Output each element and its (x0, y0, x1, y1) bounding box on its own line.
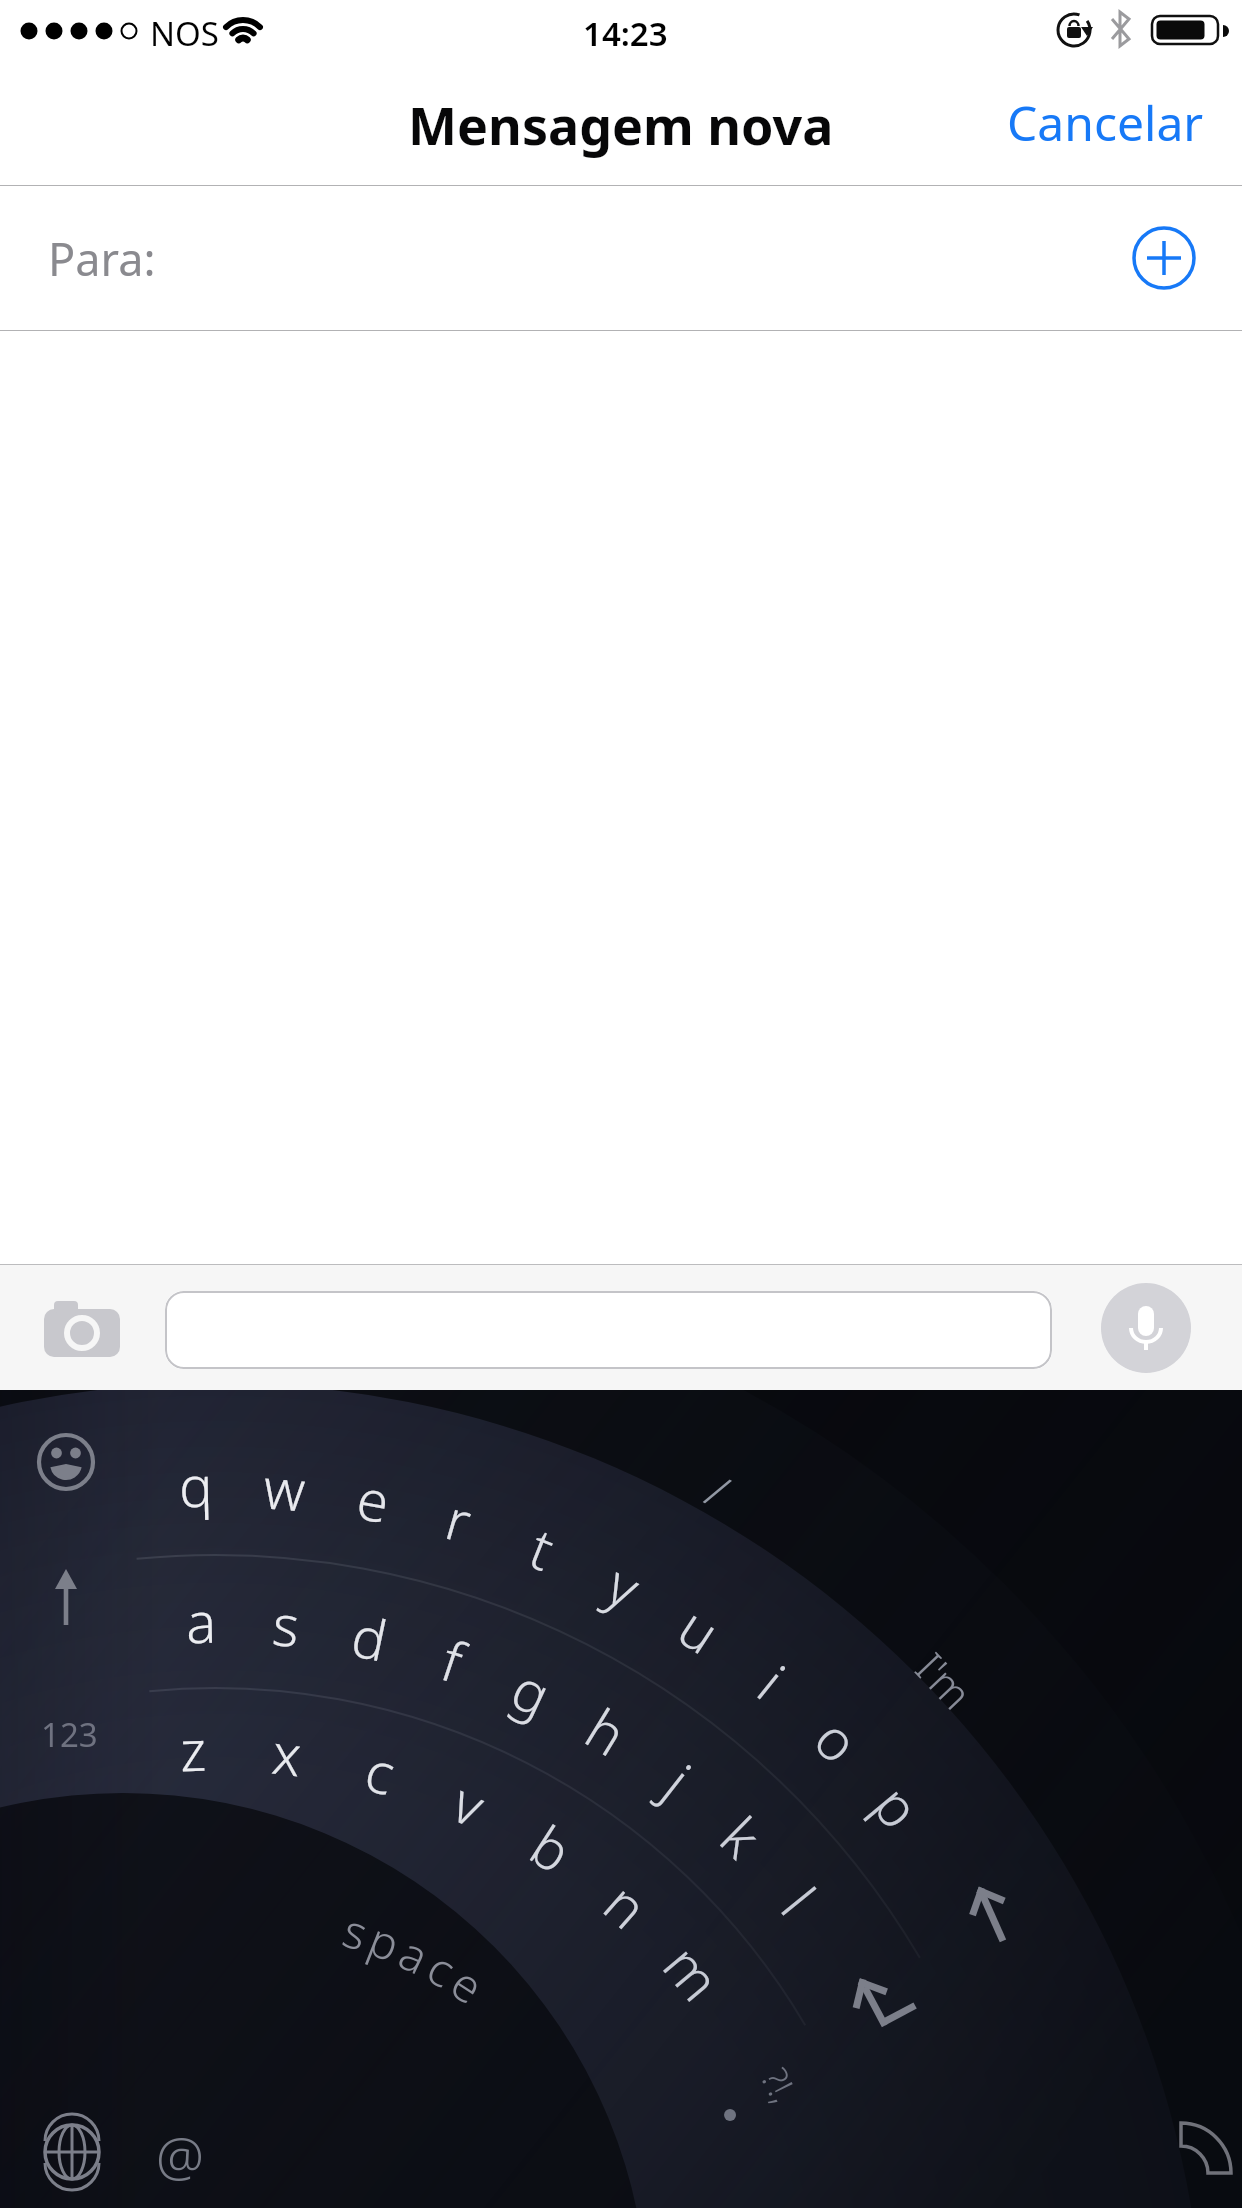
button[interactable]: w (242, 1445, 328, 1531)
button[interactable] (1101, 1283, 1191, 1373)
staticText: NOS (150, 11, 219, 56)
staticText: k (705, 1799, 779, 1873)
staticText: g (501, 1649, 563, 1733)
button[interactable]: h (552, 1676, 662, 1786)
button[interactable]: g (479, 1638, 585, 1744)
staticText: i (743, 1648, 801, 1715)
button[interactable]: p (333, 1889, 437, 1993)
button[interactable]: r (409, 1469, 508, 1568)
button[interactable]: e (326, 1452, 419, 1545)
button[interactable]: v (416, 1750, 522, 1856)
button[interactable]: / (663, 1435, 772, 1544)
staticText: / (695, 1459, 740, 1522)
button[interactable]: o (781, 1683, 894, 1796)
button[interactable]: b (497, 1793, 607, 1903)
button[interactable]: q (155, 1444, 237, 1526)
button[interactable] (1141, 2133, 1221, 2208)
button[interactable] (26, 1422, 106, 1502)
button[interactable]: Para: (0, 186, 1242, 330)
staticText: Mensagem nova (408, 89, 834, 160)
staticText: e (351, 1459, 395, 1539)
staticText: t (520, 1509, 566, 1587)
staticText: @ (156, 2118, 204, 2192)
staticText: v (442, 1763, 497, 1843)
button[interactable] (40, 1301, 124, 1357)
button[interactable] (26, 1557, 106, 1637)
button[interactable]: u (645, 1574, 755, 1684)
button[interactable] (1132, 226, 1196, 290)
button[interactable]: I'm (888, 1623, 1002, 1737)
staticText: x (269, 1714, 306, 1792)
staticText: o (799, 1701, 877, 1779)
button[interactable]: Cancelar (1007, 90, 1204, 155)
staticText: z (179, 1711, 207, 1787)
staticText: j (650, 1746, 707, 1814)
staticText: c (417, 1936, 467, 2001)
button[interactable]: l (743, 1844, 855, 1956)
button[interactable]: 123 (29, 1694, 109, 1774)
button[interactable]: a (361, 1901, 467, 2007)
staticText: y (595, 1545, 654, 1625)
staticText: a (185, 1583, 218, 1659)
staticText: ?!, (750, 2060, 809, 2111)
staticText: a (389, 1921, 439, 1988)
staticText: I'm (904, 1640, 985, 1721)
button[interactable]: e (413, 1929, 523, 2039)
staticText: b (517, 1807, 587, 1889)
button[interactable]: c (331, 1722, 429, 1820)
button[interactable]: z (152, 1708, 234, 1790)
staticText: e (440, 1951, 496, 2018)
staticText: w (261, 1448, 309, 1528)
staticText: s (336, 1898, 376, 1965)
button[interactable] (841, 1961, 921, 2041)
staticText: s (269, 1585, 303, 1663)
button[interactable] (690, 2072, 770, 2152)
button[interactable]: a (160, 1580, 242, 1662)
button[interactable] (165, 1291, 1052, 1369)
staticText: p (858, 1769, 938, 1843)
staticText: 14:23 (583, 11, 668, 56)
staticText: Cancelar (1007, 90, 1204, 155)
staticText: c (357, 1731, 403, 1811)
staticText: u (665, 1588, 735, 1670)
staticText: h (573, 1690, 641, 1772)
staticText: q (178, 1447, 214, 1523)
button[interactable]: y (570, 1531, 678, 1639)
button[interactable] (951, 1874, 1031, 1954)
button[interactable]: i (716, 1625, 828, 1737)
staticText: m (648, 1928, 739, 2016)
button[interactable]: x (243, 1709, 331, 1797)
button[interactable]: k (685, 1779, 798, 1892)
button[interactable]: t (491, 1496, 595, 1600)
button[interactable]: s (306, 1881, 406, 1981)
staticText: p (360, 1907, 409, 1976)
button[interactable]: p (842, 1750, 954, 1862)
button[interactable]: s (242, 1580, 330, 1668)
button[interactable]: j (622, 1724, 734, 1836)
button[interactable]: n (570, 1848, 683, 1961)
staticText: Para: (48, 228, 156, 289)
button[interactable]: @ (140, 2115, 220, 2195)
staticText: n (589, 1865, 665, 1945)
button[interactable]: ?!, (726, 2031, 834, 2139)
staticText: l (766, 1871, 833, 1929)
button[interactable]: f (402, 1609, 504, 1711)
staticText: r (438, 1479, 481, 1559)
staticText: 123 (41, 1712, 98, 1757)
button[interactable] (32, 2112, 112, 2192)
staticText: f (432, 1621, 473, 1699)
button[interactable]: c (388, 1914, 496, 2022)
staticText: d (345, 1596, 394, 1678)
button[interactable]: d (323, 1590, 417, 1684)
button[interactable]: m (637, 1916, 749, 2028)
